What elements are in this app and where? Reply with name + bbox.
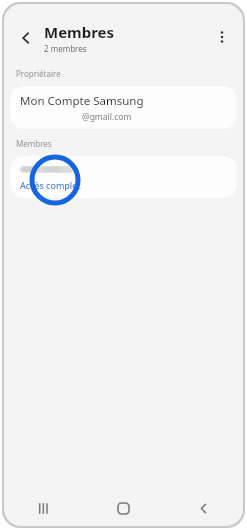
button[interactable]: Recent apps bbox=[4, 490, 83, 526]
button[interactable]: Back bbox=[163, 490, 243, 526]
button[interactable]: Accès complet bbox=[10, 156, 237, 198]
button[interactable]: Home bbox=[83, 490, 163, 526]
button[interactable]: Mon Compte Samsung bbox=[10, 86, 237, 129]
staticText: 2 membres bbox=[44, 43, 87, 54]
staticText: Accès complet bbox=[20, 179, 81, 191]
button[interactable]: More options bbox=[209, 24, 235, 50]
staticText: @gmail.com bbox=[82, 111, 132, 123]
staticText: Mon Compte Samsung bbox=[20, 93, 144, 109]
staticText: Membres bbox=[16, 138, 52, 149]
button[interactable]: Back bbox=[12, 24, 40, 52]
staticText: Membres bbox=[44, 22, 115, 42]
staticText: Propriétaire bbox=[16, 68, 61, 79]
